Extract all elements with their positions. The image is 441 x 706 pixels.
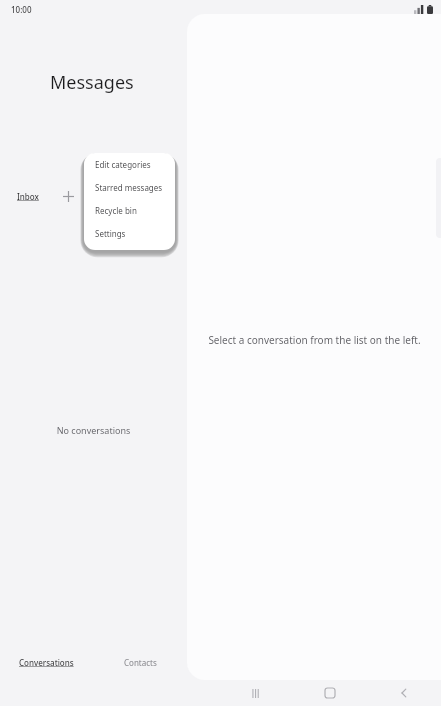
button[interactable]: Contacts xyxy=(93,657,187,668)
staticText: Recycle bin xyxy=(95,205,137,216)
staticText: 10:00 xyxy=(11,4,32,15)
staticText: Messages xyxy=(50,70,134,95)
staticText: Inbox xyxy=(17,191,39,202)
button[interactable]: Add category xyxy=(58,186,78,206)
button[interactable]: Back xyxy=(367,680,441,706)
button[interactable]: Inbox xyxy=(16,189,40,204)
staticText: Select a conversation from the list on t… xyxy=(208,333,421,347)
staticText: Starred messages xyxy=(95,182,163,193)
button[interactable]: Recent apps xyxy=(220,680,293,706)
button[interactable]: Conversations xyxy=(0,657,93,668)
staticText: Contacts xyxy=(124,657,157,668)
button[interactable]: Settings xyxy=(84,222,175,245)
button[interactable]: Home xyxy=(293,680,367,706)
button[interactable]: Edit categories xyxy=(84,153,175,176)
button[interactable]: Recycle bin xyxy=(84,199,175,222)
staticText: Conversations xyxy=(19,657,74,668)
staticText: Settings xyxy=(95,228,126,239)
staticText: Edit categories xyxy=(95,159,151,170)
staticText: No conversations xyxy=(0,424,187,436)
button[interactable]: Starred messages xyxy=(84,176,175,199)
